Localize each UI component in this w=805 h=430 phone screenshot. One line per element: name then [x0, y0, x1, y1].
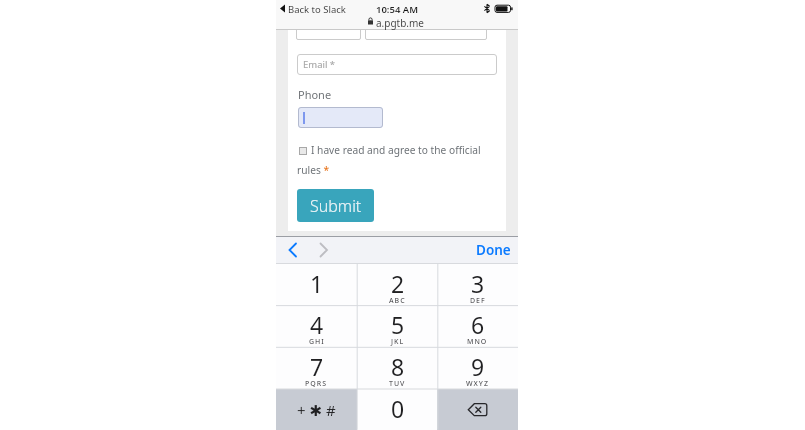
- staticText: 10:54 AM: [276, 3, 518, 16]
- staticText: GHI: [309, 337, 325, 347]
- staticText: DEF: [470, 296, 486, 306]
- staticText: a.pgtb.me: [279, 16, 521, 30]
- button[interactable]: 4: [276, 305, 357, 347]
- button[interactable]: 0: [357, 389, 438, 430]
- staticText: + ✱ #: [297, 400, 336, 420]
- button[interactable]: Submit: [297, 189, 374, 222]
- button[interactable]: [437, 389, 518, 430]
- staticText: I have read and agree to the official: [311, 143, 481, 157]
- staticText: Email *: [303, 58, 336, 71]
- staticText: TUV: [389, 379, 406, 389]
- staticText: Phone: [298, 87, 332, 102]
- staticText: JKL: [391, 337, 405, 347]
- staticText: MNO: [467, 337, 488, 347]
- button[interactable]: 1: [276, 264, 357, 306]
- button[interactable]: [298, 107, 383, 128]
- staticText: PQRS: [305, 379, 328, 389]
- staticText: 1: [310, 268, 324, 299]
- staticText: 7: [310, 351, 324, 382]
- button[interactable]: 5: [357, 305, 438, 347]
- staticText: Back to Slack: [288, 3, 346, 16]
- staticText: 2: [391, 268, 405, 299]
- staticText: rules *: [297, 163, 330, 177]
- staticText: 0: [391, 393, 405, 424]
- staticText: Submit: [310, 195, 362, 217]
- button[interactable]: Done: [476, 241, 511, 259]
- button[interactable]: 3: [437, 264, 518, 306]
- staticText: 6: [471, 309, 485, 340]
- button[interactable]: I have read and agree to the official: [299, 143, 481, 157]
- staticText: 9: [471, 351, 485, 382]
- staticText: WXYZ: [466, 379, 489, 389]
- staticText: ABC: [389, 296, 406, 306]
- button[interactable]: Email *: [297, 54, 497, 75]
- button[interactable]: 8: [357, 347, 438, 389]
- button[interactable]: 9: [437, 347, 518, 389]
- staticText: 3: [471, 268, 485, 299]
- staticText: 4: [310, 309, 324, 340]
- button[interactable]: 2: [357, 264, 438, 306]
- button[interactable]: [276, 389, 357, 430]
- staticText: 8: [391, 351, 405, 382]
- staticText: 5: [391, 309, 405, 340]
- button[interactable]: 7: [276, 347, 357, 389]
- button[interactable]: 6: [437, 305, 518, 347]
